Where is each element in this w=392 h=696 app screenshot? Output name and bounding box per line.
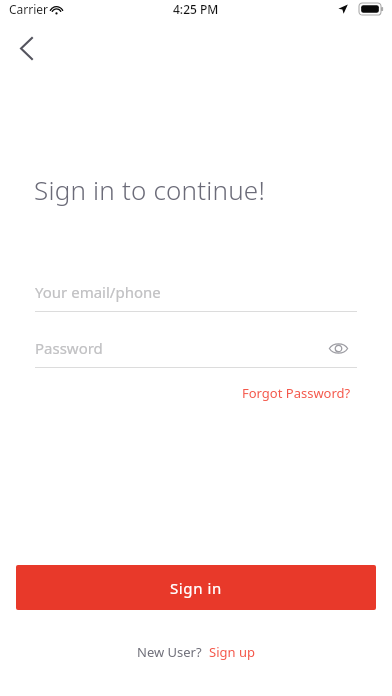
staticText: New User?: [137, 643, 202, 661]
button[interactable]: Password: [35, 331, 357, 368]
button[interactable]: Sign in: [16, 565, 376, 610]
button[interactable]: Your email/phone: [35, 275, 357, 312]
staticText: Your email/phone: [35, 282, 161, 302]
staticText: Carrier: [9, 1, 49, 17]
button[interactable]: Forgot Password?: [240, 382, 353, 404]
staticText: Password: [35, 338, 103, 358]
button[interactable]: Back: [8, 30, 44, 66]
staticText: 4:25 PM: [173, 1, 219, 17]
button[interactable]: Sign up: [209, 643, 255, 661]
staticText: Sign in: [170, 578, 222, 598]
staticText: Sign up: [209, 643, 255, 661]
button[interactable]: Show password: [322, 332, 354, 364]
staticText: Forgot Password?: [242, 384, 351, 402]
staticText: Sign in to continue!: [34, 172, 265, 207]
